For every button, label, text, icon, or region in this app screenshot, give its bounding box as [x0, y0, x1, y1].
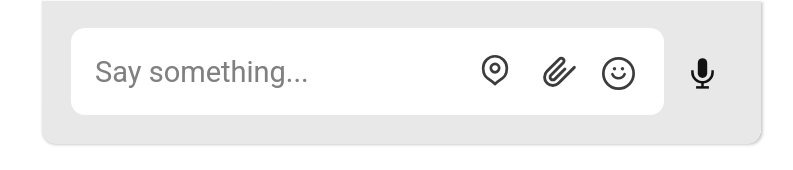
button[interactable]: Location: [475, 50, 515, 90]
button[interactable]: Emoji: [598, 53, 638, 93]
staticText: Say something...: [95, 55, 309, 89]
button[interactable]: Attach file: [539, 51, 579, 91]
button[interactable]: Voice message: [682, 52, 722, 92]
